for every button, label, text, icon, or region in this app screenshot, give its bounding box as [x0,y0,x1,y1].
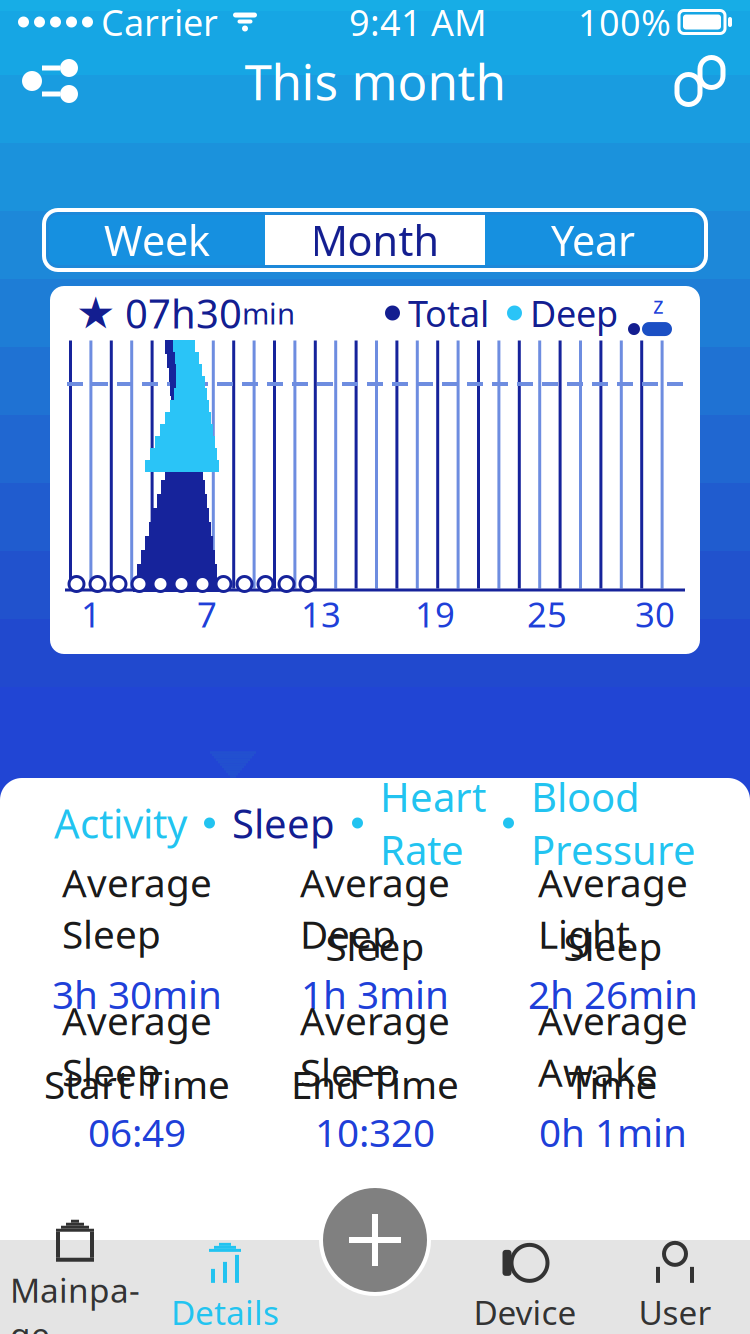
staticText: Blood Pressure [531,770,696,876]
staticText: Total [408,289,489,337]
staticText: Average Awake [538,995,688,1097]
staticText: Time [568,1058,657,1110]
staticText: 7 [197,591,217,637]
staticText: Week [104,213,210,267]
button[interactable]: Details [150,1240,300,1334]
button[interactable]: Month [265,215,485,265]
button[interactable]: Device [450,1240,600,1334]
button[interactable]: Share [6,44,94,118]
button[interactable]: Link device [656,44,744,118]
staticText: min [242,293,295,332]
staticText: 2h 26min [528,968,698,1020]
button[interactable]: Add [319,1184,431,1296]
staticText: 07h30 [125,286,242,339]
staticText: Month [310,213,439,267]
staticText: Details [171,1290,279,1334]
staticText: 0h 1min [539,1106,687,1158]
staticText: z [653,290,664,320]
staticText: Year [551,213,635,267]
button[interactable]: Activity [50,794,191,852]
staticText: Average Sleep [62,995,212,1097]
staticText: This month [244,48,505,114]
staticText: 13 [301,591,341,637]
staticText: 9:41 AM [349,0,487,46]
staticText: 19 [415,591,455,637]
staticText: Mainpage [10,1268,140,1334]
button[interactable]: Sleep [228,794,339,852]
staticText: Sleep [325,920,424,972]
staticText: 10:320 [315,1106,435,1158]
staticText: 25 [527,591,567,637]
button[interactable]: Blood Pressure [527,794,700,852]
staticText: User [638,1290,711,1334]
staticText: Sleep [563,920,662,972]
staticText: Average Light [538,857,688,959]
staticText: 06:49 [88,1106,186,1158]
staticText: Deep [530,289,618,337]
staticText: Average Sleep [300,995,450,1097]
button[interactable]: Week [49,215,265,265]
staticText: 30 [635,591,675,637]
staticText: Average Sleep [62,857,212,959]
staticText: 1h 3min [301,968,449,1020]
staticText: End Time [291,1058,459,1110]
button[interactable]: Year [485,215,701,265]
staticText: Heart Rate [380,770,486,876]
staticText: Activity [54,796,187,849]
staticText: Start Time [44,1058,230,1110]
button[interactable]: User [600,1240,750,1334]
staticText: Device [473,1290,576,1334]
staticText: Sleep [232,796,335,849]
button[interactable]: Heart Rate [376,794,490,852]
staticText: 100% [578,0,671,46]
staticText: 3h 30min [52,968,222,1020]
staticText: 1 [81,591,101,637]
button[interactable]: Mainpage [0,1240,150,1334]
staticText: Carrier [101,0,218,46]
staticText: ★ [76,288,115,338]
staticText: Average Deep [300,857,450,959]
